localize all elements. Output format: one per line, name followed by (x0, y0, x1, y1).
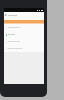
staticText: Notifications (8, 40, 20, 43)
button[interactable]: Notifications (4, 38, 44, 45)
button[interactable]: Back (4, 12, 8, 17)
staticText: Display options (8, 47, 23, 50)
staticText: Settings (8, 13, 18, 16)
button[interactable]: Connections (4, 24, 44, 31)
button[interactable]: Display options (4, 45, 44, 52)
button[interactable]: Sounds (4, 31, 44, 38)
staticText: Connections (8, 26, 20, 29)
staticText: Sounds (8, 33, 15, 36)
